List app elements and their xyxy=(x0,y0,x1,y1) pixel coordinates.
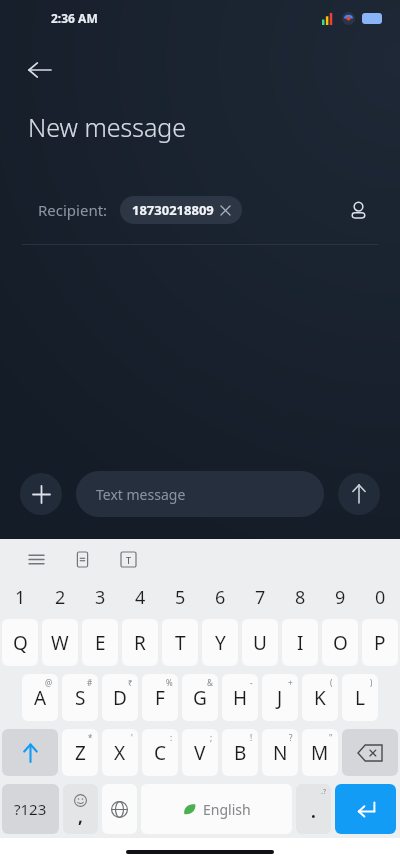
staticText: W xyxy=(51,630,69,656)
button[interactable]: S xyxy=(62,674,98,721)
staticText: L xyxy=(355,685,365,711)
button[interactable]: Y xyxy=(202,619,238,666)
button[interactable]: 0 xyxy=(360,579,400,615)
button[interactable]: 7 xyxy=(240,579,280,615)
button[interactable]: I xyxy=(282,619,318,666)
button[interactable]: 1 xyxy=(0,579,40,615)
staticText: Q xyxy=(13,630,28,656)
staticText: 5 xyxy=(175,585,186,610)
staticText: 1 xyxy=(15,585,26,610)
staticText: I xyxy=(297,630,304,656)
button[interactable]: N xyxy=(262,729,298,776)
staticText: 2 xyxy=(55,585,66,610)
staticText: A xyxy=(34,685,47,711)
staticText: New message xyxy=(28,110,187,144)
staticText: M xyxy=(311,740,329,766)
button[interactable]: E xyxy=(82,619,118,666)
staticText: 2:36 AM xyxy=(51,10,98,26)
staticText: * xyxy=(88,732,93,743)
button[interactable]: U xyxy=(242,619,278,666)
staticText: 9 xyxy=(335,585,346,610)
staticText: E xyxy=(95,630,106,656)
staticText: C xyxy=(154,740,167,766)
button[interactable]: Z xyxy=(62,729,98,776)
button[interactable]: V xyxy=(182,729,218,776)
button[interactable]: O xyxy=(322,619,358,666)
button[interactable]: ?123 xyxy=(2,784,59,834)
staticText: U xyxy=(253,630,267,656)
button[interactable]: Text message xyxy=(76,471,324,517)
button[interactable]: Shift xyxy=(2,729,58,776)
button[interactable]: Q xyxy=(2,619,38,666)
staticText: 8 xyxy=(295,585,306,610)
staticText: 18730218809 xyxy=(132,201,214,219)
button[interactable]: C xyxy=(142,729,178,776)
staticText: 6 xyxy=(215,585,226,610)
button[interactable]: A xyxy=(22,674,58,721)
button[interactable]: 3 xyxy=(80,579,120,615)
button[interactable]: Back xyxy=(18,48,62,92)
staticText: 7 xyxy=(255,585,266,610)
button[interactable]: 6 xyxy=(200,579,240,615)
staticText: ; xyxy=(210,732,213,743)
button[interactable]: W xyxy=(42,619,78,666)
staticText: Text message xyxy=(96,485,186,504)
button[interactable]: K xyxy=(302,674,338,721)
button[interactable]: Add attachment xyxy=(20,473,62,515)
button[interactable]: Clipboard xyxy=(66,543,98,575)
button[interactable]: L xyxy=(342,674,378,721)
button[interactable]: Emoji xyxy=(63,784,98,834)
button[interactable]: 2 xyxy=(40,579,80,615)
button[interactable]: 5 xyxy=(160,579,200,615)
staticText: H xyxy=(233,685,248,711)
staticText: ?123 xyxy=(14,799,47,819)
staticText: Y xyxy=(215,630,226,656)
staticText: + xyxy=(288,677,293,688)
button[interactable]: Backspace xyxy=(342,729,398,776)
staticText: @ xyxy=(45,677,53,688)
button[interactable]: 8 xyxy=(280,579,320,615)
staticText: ₹ xyxy=(128,677,133,688)
button[interactable]: B xyxy=(222,729,258,776)
button[interactable]: X xyxy=(102,729,138,776)
staticText: ' xyxy=(131,732,133,743)
button[interactable]: Contacts xyxy=(338,190,378,230)
staticText: N xyxy=(273,740,288,766)
button[interactable]: G xyxy=(182,674,218,721)
staticText: . xyxy=(311,800,316,823)
button[interactable]: English xyxy=(141,784,292,834)
button[interactable]: Send xyxy=(338,473,380,515)
button[interactable]: P xyxy=(362,619,398,666)
button[interactable]: Text style xyxy=(112,543,144,575)
staticText: D xyxy=(113,685,127,711)
staticText: " xyxy=(329,732,333,743)
button[interactable]: J xyxy=(262,674,298,721)
button[interactable]: Menu xyxy=(20,543,52,575)
staticText: G xyxy=(193,685,207,711)
staticText: T xyxy=(126,554,132,566)
staticText: ? xyxy=(289,732,293,743)
button[interactable]: F xyxy=(142,674,178,721)
staticText: , xyxy=(78,805,83,828)
button[interactable]: .? xyxy=(296,784,331,834)
button[interactable]: H xyxy=(222,674,258,721)
button[interactable]: M xyxy=(302,729,338,776)
staticText: ! xyxy=(250,732,253,743)
staticText: F xyxy=(155,685,165,711)
button[interactable]: Enter xyxy=(335,784,396,834)
button[interactable]: Change language xyxy=(102,784,137,834)
staticText: Recipient: xyxy=(38,200,108,220)
button[interactable]: 18730218809 xyxy=(120,196,242,224)
staticText: : xyxy=(170,732,173,743)
staticText: R xyxy=(134,630,146,656)
button[interactable]: D xyxy=(102,674,138,721)
button[interactable]: 9 xyxy=(320,579,360,615)
button[interactable]: 4 xyxy=(120,579,160,615)
staticText: O xyxy=(333,630,348,656)
button[interactable]: R xyxy=(122,619,158,666)
button[interactable]: T xyxy=(162,619,198,666)
staticText: T xyxy=(175,630,186,656)
staticText: Z xyxy=(75,740,86,766)
staticText: & xyxy=(207,677,213,688)
staticText: P xyxy=(374,630,386,656)
